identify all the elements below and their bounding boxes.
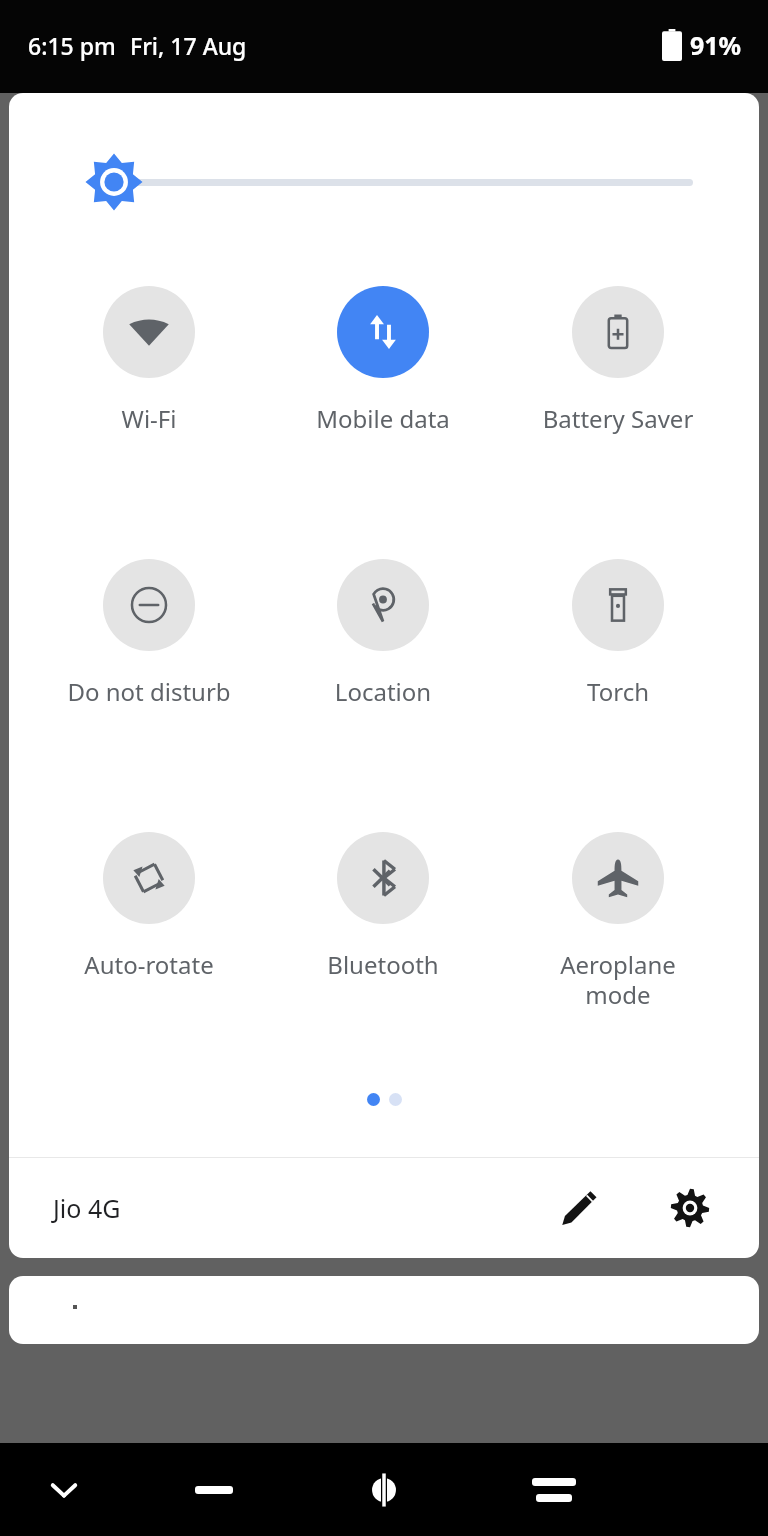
staticText: Auto-rotate [55,948,243,981]
button[interactable]: Auto-rotate [55,832,243,981]
staticText: Wi-Fi [55,402,243,435]
staticText: Fri, 17 Aug [130,30,247,61]
button[interactable]: Do not disturb [55,559,243,708]
staticText: 6:15 pm [28,30,116,61]
button[interactable]: Location [289,559,477,708]
button[interactable] [9,1276,759,1344]
button[interactable]: Battery Saver [524,286,712,435]
staticText: Bluetooth [289,948,477,981]
staticText: Battery Saver [524,402,712,435]
staticText: Do not disturb [55,675,243,708]
staticText: Jio 4G [53,1191,121,1225]
button[interactable]: Jio 4G [37,1179,137,1237]
staticText: Torch [524,675,712,708]
button[interactable]: Edit [543,1172,615,1244]
button[interactable]: Aeroplane mode [524,832,712,1011]
button[interactable]: Home [172,1448,256,1532]
button[interactable]: Torch [524,559,712,708]
button[interactable]: Bluetooth [289,832,477,981]
button[interactable]: Back [22,1448,106,1532]
staticText: Aeroplane mode [524,948,712,1011]
button[interactable]: Mobile data [289,286,477,435]
staticText: 91% [690,28,742,62]
button[interactable]: Recent apps [512,1448,596,1532]
staticText: Location [289,675,477,708]
button[interactable]: Split screen [342,1448,426,1532]
button[interactable]: Settings [654,1172,726,1244]
button[interactable]: Wi-Fi [55,286,243,435]
staticText: Mobile data [289,402,477,435]
button[interactable]: Brightness [9,93,759,203]
